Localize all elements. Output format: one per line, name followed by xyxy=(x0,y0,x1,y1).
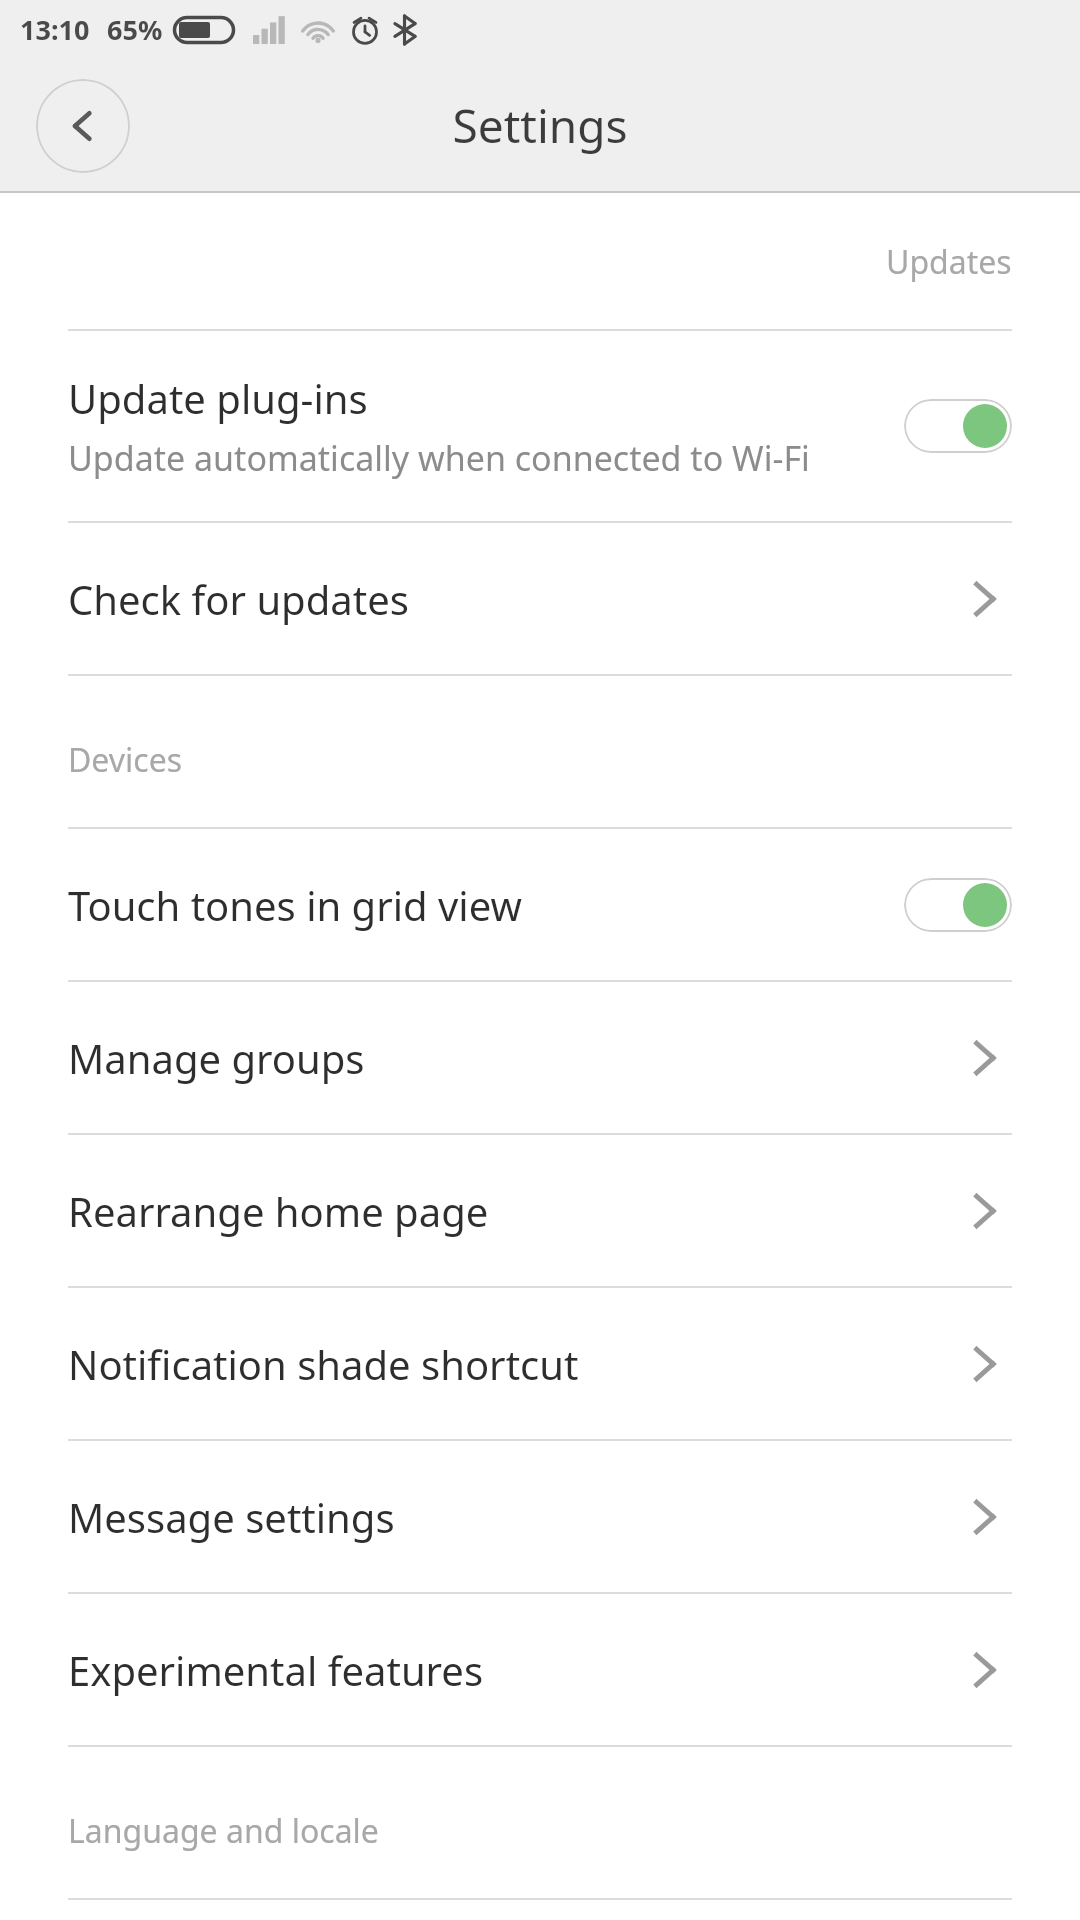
button[interactable]: Check for updates xyxy=(0,523,1080,674)
staticText: Update plug-ins xyxy=(68,371,368,425)
staticText: Manage groups xyxy=(68,1031,956,1085)
staticText: 65% xyxy=(107,11,163,48)
staticText: Experimental features xyxy=(68,1643,956,1697)
staticText: Updates xyxy=(886,240,1012,284)
button[interactable]: Update plug-ins xyxy=(0,331,1080,521)
button[interactable]: Message settings xyxy=(0,1441,1080,1592)
button[interactable]: Rearrange home page xyxy=(0,1135,1080,1286)
staticText: Update automatically when connected to W… xyxy=(68,435,810,481)
staticText: Message settings xyxy=(68,1490,956,1544)
staticText: Language and locale xyxy=(68,1809,379,1853)
staticText: Touch tones in grid view xyxy=(68,878,904,932)
staticText: Notification shade shortcut xyxy=(68,1337,956,1391)
button[interactable]: Experimental features xyxy=(0,1594,1080,1745)
button[interactable]: Notification shade shortcut xyxy=(0,1288,1080,1439)
button[interactable]: Toggle on xyxy=(904,878,1012,932)
staticText: Check for updates xyxy=(68,572,956,626)
button[interactable]: Back xyxy=(36,79,130,173)
staticText: Rearrange home page xyxy=(68,1184,956,1238)
staticText: 13:10 xyxy=(20,11,90,48)
staticText: Settings xyxy=(452,94,628,157)
staticText: Devices xyxy=(68,738,183,782)
button[interactable]: Manage groups xyxy=(0,982,1080,1133)
button[interactable]: Touch tones in grid view xyxy=(0,829,1080,980)
button[interactable]: Toggle on xyxy=(904,399,1012,453)
